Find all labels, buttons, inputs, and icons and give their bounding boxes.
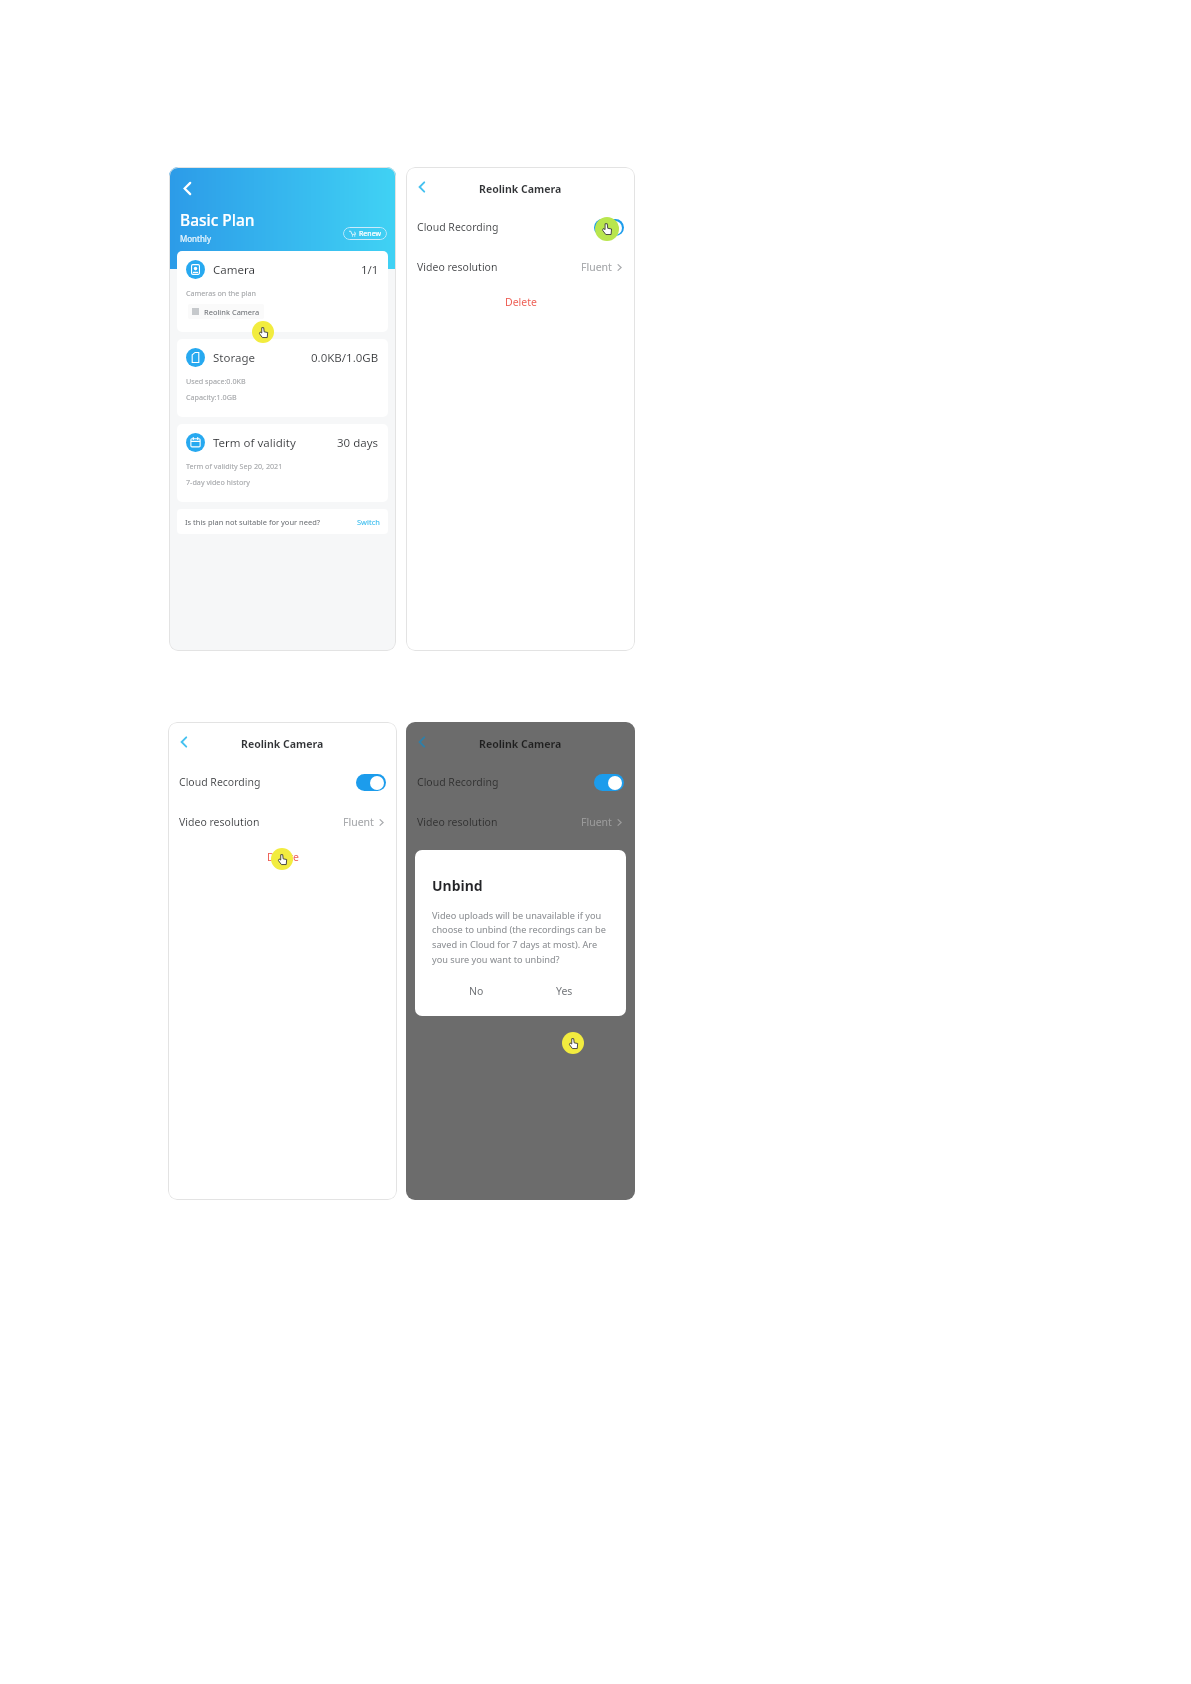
staticText: No — [469, 984, 484, 998]
staticText: Renew — [359, 229, 381, 239]
staticText: Fluent — [343, 815, 374, 829]
button[interactable]: Video resolution — [168, 802, 397, 842]
button[interactable]: Back — [414, 734, 430, 750]
staticText: Is this plan not suitable for your need? — [185, 517, 321, 527]
staticText: Unbind — [432, 876, 483, 895]
button[interactable]: Renew — [343, 227, 387, 240]
staticText: Cloud Recording — [417, 775, 499, 789]
staticText: Reolink Camera — [204, 307, 260, 317]
button[interactable]: Storage — [177, 339, 388, 417]
button[interactable]: Camera — [177, 251, 388, 332]
staticText: Term of validity Sep 20, 2021 — [186, 461, 283, 471]
button[interactable]: Delete — [257, 847, 309, 867]
staticText: Reolink Camera — [479, 737, 562, 751]
button[interactable]: No — [432, 984, 520, 998]
button[interactable]: Is this plan not suitable for your need? — [177, 509, 388, 534]
button[interactable]: Cloud Recording toggle — [594, 219, 624, 236]
staticText: Video resolution — [417, 260, 498, 274]
staticText: Basic Plan — [180, 209, 255, 230]
staticText: 7-day video history — [186, 477, 250, 487]
staticText: Fluent — [581, 815, 612, 829]
staticText: 0.0KB/1.0GB — [311, 350, 379, 366]
button[interactable]: Cloud Recording — [406, 207, 635, 247]
staticText: Storage — [213, 350, 255, 366]
other: Back — [179, 180, 196, 197]
staticText: Used space:0.0KB — [186, 376, 246, 386]
staticText: Video resolution — [417, 815, 498, 829]
other: Back — [415, 735, 429, 749]
button[interactable]: Back — [177, 178, 198, 199]
staticText: Cloud Recording — [179, 775, 261, 789]
button[interactable]: Reolink Camera — [188, 304, 264, 319]
staticText: Reolink Camera — [479, 182, 562, 196]
button[interactable]: Video resolution — [406, 247, 635, 287]
staticText: Video resolution — [179, 815, 260, 829]
button[interactable]: Delete — [495, 292, 547, 312]
staticText: Reolink Camera — [241, 737, 324, 751]
button[interactable]: Back — [414, 179, 430, 195]
staticText: Video uploads will be unavailable if you… — [432, 909, 609, 966]
staticText: Cameras on the plan — [186, 288, 256, 298]
button[interactable]: Cloud Recording toggle — [356, 774, 386, 791]
staticText: Fluent — [581, 260, 612, 274]
button[interactable]: Cloud Recording — [168, 762, 397, 802]
button[interactable]: Yes — [520, 984, 609, 998]
button[interactable]: Cloud Recording — [406, 762, 635, 802]
staticText: Monthly — [180, 233, 212, 244]
staticText: Yes — [556, 984, 573, 998]
other: Back — [177, 735, 191, 749]
staticText: Delete — [505, 295, 537, 309]
button[interactable]: Cloud Recording toggle — [594, 774, 624, 791]
staticText: Cloud Recording — [417, 220, 499, 234]
staticText: Camera — [213, 262, 255, 278]
other: Back — [415, 180, 429, 194]
staticText: Term of validity — [213, 435, 296, 451]
staticText: 30 days — [337, 435, 379, 451]
button[interactable]: Delete — [495, 847, 547, 867]
staticText: Capacity:1.0GB — [186, 392, 237, 402]
staticText: 1/1 — [361, 262, 379, 278]
button[interactable]: Video resolution — [406, 802, 635, 842]
button[interactable]: Term of validity — [177, 424, 388, 502]
staticText: Delete — [267, 850, 299, 864]
button[interactable]: Back — [176, 734, 192, 750]
staticText: Switch — [357, 517, 380, 527]
